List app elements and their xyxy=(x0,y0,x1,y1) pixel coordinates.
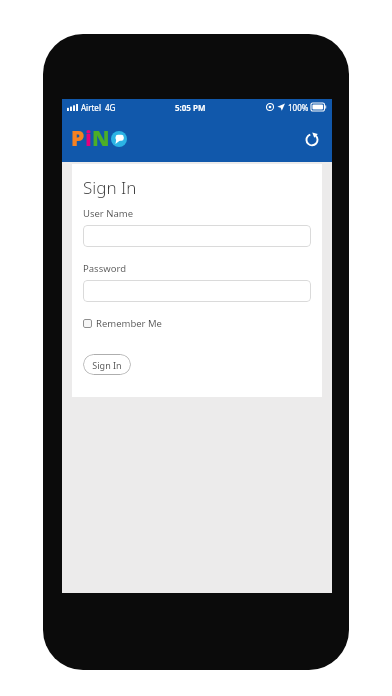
staticText: 4G xyxy=(105,102,116,113)
staticText: Airtel xyxy=(81,102,101,113)
button[interactable]: Remember Me xyxy=(83,317,162,330)
button[interactable]: P xyxy=(69,122,129,155)
staticText: Sign In xyxy=(83,176,137,199)
staticText: P xyxy=(71,124,85,153)
staticText: 100% xyxy=(288,102,309,113)
button[interactable]: Text field xyxy=(83,225,311,247)
staticText: Password xyxy=(83,262,126,275)
button[interactable]: Sign In xyxy=(83,354,131,375)
staticText: Remember Me xyxy=(96,317,162,330)
button[interactable]: Refresh xyxy=(301,128,323,150)
staticText: User Name xyxy=(83,207,134,220)
staticText: N xyxy=(92,124,110,153)
staticText: Sign In xyxy=(92,359,122,371)
button[interactable]: Text field xyxy=(83,280,311,302)
staticText: 5:05 PM xyxy=(175,102,206,113)
staticText: i xyxy=(85,124,92,153)
